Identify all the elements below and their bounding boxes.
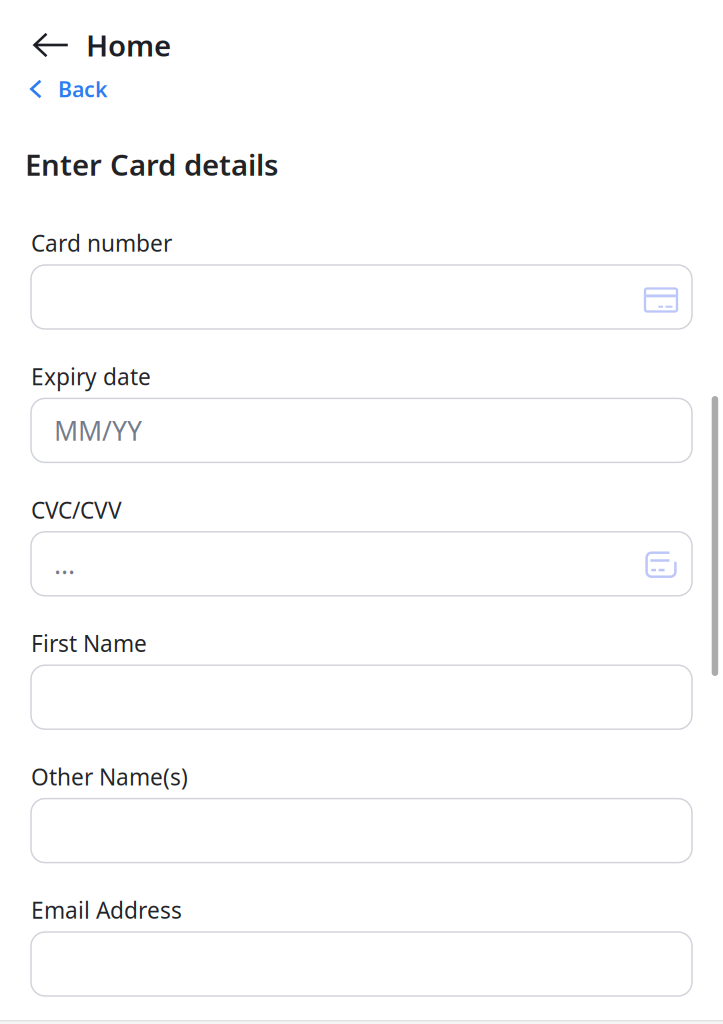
staticText: ... xyxy=(54,546,75,581)
staticText: Card number xyxy=(31,228,172,258)
button[interactable]: Home xyxy=(33,26,171,64)
staticText: Home xyxy=(86,25,171,64)
staticText: Email Address xyxy=(31,895,182,925)
button[interactable]: Expiry date xyxy=(31,398,692,462)
button[interactable]: Email Address xyxy=(31,932,692,996)
staticText: Enter Card details xyxy=(25,145,278,184)
button[interactable]: Other Name(s) xyxy=(31,799,692,863)
button[interactable]: Card number xyxy=(31,265,692,329)
staticText: Other Name(s) xyxy=(31,762,188,792)
button[interactable]: First Name xyxy=(31,665,692,729)
button[interactable]: Back xyxy=(30,77,108,101)
staticText: First Name xyxy=(31,628,147,658)
staticText: Back xyxy=(58,75,108,103)
staticText: MM/YY xyxy=(54,413,142,448)
staticText: Expiry date xyxy=(31,361,151,391)
button[interactable]: CVC/CVV xyxy=(31,532,692,596)
staticText: CVC/CVV xyxy=(31,495,122,525)
